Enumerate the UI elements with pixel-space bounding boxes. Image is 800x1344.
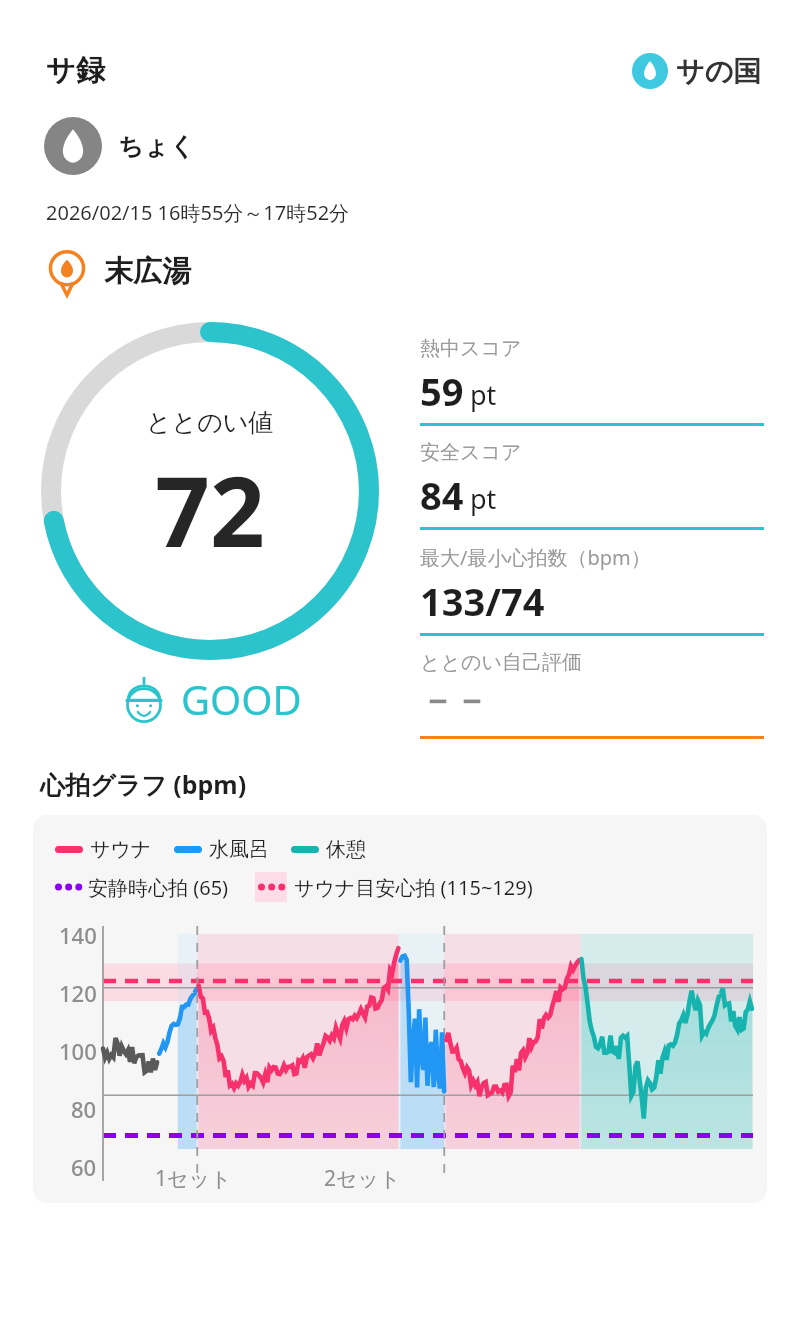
- other: サの国ロゴ: [632, 53, 668, 89]
- staticText: 末広湯: [104, 253, 191, 290]
- staticText: ととのい値: [146, 407, 274, 438]
- staticText: 水風呂: [209, 837, 269, 862]
- staticText: pt: [470, 376, 497, 413]
- button[interactable]: ちょく: [44, 117, 195, 175]
- staticText: 休憩: [326, 837, 366, 862]
- staticText: ちょく: [118, 131, 195, 162]
- staticText: 1セット: [155, 1164, 232, 1193]
- other: GOOD: [119, 674, 169, 724]
- staticText: 80: [71, 1094, 97, 1124]
- button[interactable]: 安全スコア: [420, 426, 764, 530]
- button[interactable]: サウナ: [33, 815, 767, 1203]
- staticText: 60: [71, 1152, 97, 1182]
- staticText: サウナ: [90, 837, 152, 862]
- staticText: サウナ目安心拍 (115~129): [294, 874, 533, 901]
- staticText: 133/74: [420, 575, 545, 627]
- staticText: 最大/最小心拍数（bpm）: [420, 544, 651, 571]
- staticText: pt: [470, 480, 497, 517]
- button[interactable]: 熱中スコア: [420, 322, 764, 426]
- button[interactable]: GOOD: [119, 672, 302, 726]
- staticText: －－: [420, 679, 488, 722]
- staticText: 2セット: [324, 1164, 401, 1193]
- staticText: 120: [59, 978, 97, 1008]
- staticText: 熱中スコア: [420, 336, 522, 361]
- button[interactable]: ととのい自己評価: [420, 636, 764, 739]
- staticText: 心拍グラフ (bpm): [40, 767, 247, 801]
- staticText: ととのい自己評価: [420, 650, 582, 675]
- staticText: サの国: [676, 54, 762, 89]
- button[interactable]: 最大/最小心拍数（bpm）: [420, 530, 764, 636]
- button[interactable]: サの国ロゴ: [632, 53, 762, 89]
- staticText: 2026/02/15 16時55分～17時52分: [46, 199, 350, 226]
- staticText: 140: [59, 920, 97, 950]
- staticText: 安全スコア: [420, 440, 522, 465]
- staticText: GOOD: [181, 672, 302, 726]
- staticText: 59: [420, 365, 464, 417]
- staticText: 72: [155, 444, 265, 575]
- staticText: 100: [59, 1036, 97, 1066]
- staticText: 84: [420, 469, 464, 521]
- staticText: サ録: [46, 52, 105, 89]
- staticText: 安静時心拍 (65): [88, 874, 229, 901]
- button[interactable]: 末広湯: [44, 248, 191, 294]
